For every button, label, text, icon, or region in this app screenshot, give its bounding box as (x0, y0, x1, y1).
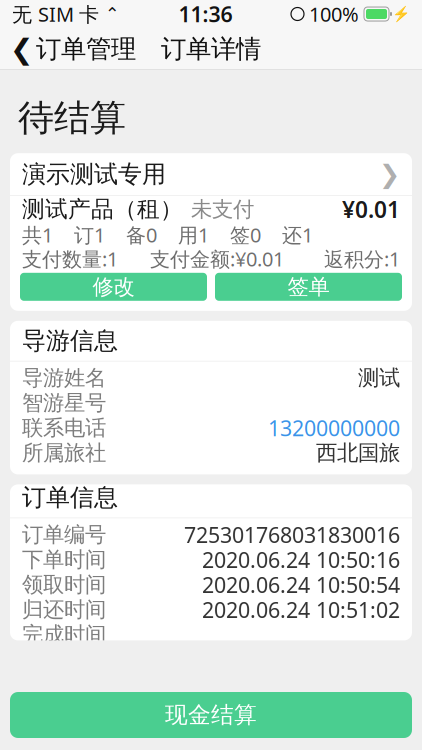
staticText: 订单管理 (36, 33, 136, 64)
staticText: 下单时间 (22, 547, 106, 573)
staticText: 2020.06.24 10:51:02 (202, 596, 400, 624)
staticText: 归还时间 (22, 597, 106, 623)
staticText: 智游星号 (22, 390, 106, 416)
staticText: 用1 (178, 221, 209, 248)
staticText: 订单编号 (22, 522, 106, 548)
button[interactable]: 签单 (215, 273, 402, 301)
staticText: 西北国旅 (316, 440, 400, 466)
staticText: 签0 (230, 221, 261, 248)
staticText: 2020.06.24 10:50:16 (202, 546, 400, 574)
staticText: 导游姓名 (22, 365, 106, 391)
staticText: 签单 (287, 274, 329, 300)
staticText: 领取时间 (22, 572, 106, 598)
staticText: 725301768031830016 (184, 521, 400, 549)
staticText: ⌃ (99, 4, 120, 24)
staticText: ❮ (10, 33, 33, 65)
staticText: 无 SIM 卡 (12, 1, 99, 27)
staticText: ¥0.01 (342, 194, 400, 224)
staticText: ⚡ (392, 6, 410, 22)
button[interactable]: 演示测试专用 (10, 153, 412, 195)
staticText: 联系电话 (22, 415, 106, 441)
button[interactable]: 修改 (20, 273, 207, 301)
staticText: 完成时间 (22, 622, 106, 648)
staticText: 支付数量:1 (22, 245, 118, 272)
staticText: 2020.06.24 10:50:54 (202, 571, 400, 599)
staticText: 订单信息 (22, 483, 118, 512)
button[interactable]: 现金结算 (10, 692, 412, 738)
staticText: 100% (309, 1, 359, 27)
staticText: 修改 (92, 274, 134, 300)
staticText: 订1 (74, 221, 105, 248)
staticText: 测试 (358, 365, 400, 391)
button[interactable]: ❮ (0, 25, 136, 73)
staticText: 返积分:1 (324, 245, 400, 272)
staticText: 备0 (126, 221, 157, 248)
staticText: 测试产品（租） (22, 195, 183, 223)
staticText: 13200000000 (268, 414, 400, 442)
staticText: 待结算 (18, 96, 126, 140)
staticText: ❯ (379, 160, 400, 189)
staticText: 11:36 (178, 0, 232, 28)
staticText: 所属旅社 (22, 440, 106, 466)
staticText: 订单详情 (161, 33, 261, 64)
staticText: 现金结算 (165, 701, 257, 729)
staticText: 演示测试专用 (22, 159, 166, 189)
staticText: 导游信息 (22, 326, 118, 356)
staticText: 未支付 (191, 196, 254, 222)
staticText: 支付金额:¥0.01 (150, 245, 284, 272)
staticText: 还1 (282, 221, 313, 248)
staticText: 共1 (22, 221, 53, 248)
